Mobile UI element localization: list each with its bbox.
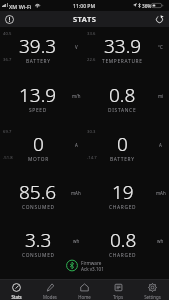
staticText: 69.7 [3, 129, 12, 135]
staticText: mAh [156, 190, 166, 196]
staticText: m/h [72, 93, 81, 99]
staticText: 36.7 [3, 57, 12, 63]
staticText: mi [158, 93, 164, 99]
staticText: Firmware [81, 260, 102, 266]
button[interactable]: 33.6 [84, 26, 169, 75]
staticText: BATTERY [110, 156, 135, 163]
staticText: °C [158, 44, 163, 50]
staticText: 39.3 [19, 33, 57, 59]
staticText: 13.9 [19, 82, 57, 108]
staticText: CONSUMED [22, 252, 55, 259]
button[interactable]: wh [0, 220, 84, 268]
staticText: 30.3 [87, 129, 96, 135]
button[interactable]: Refresh [152, 12, 167, 27]
staticText: Home [78, 294, 91, 300]
button[interactable]: Modes [33, 280, 67, 300]
button[interactable]: mAh [0, 172, 84, 220]
staticText: 40.5 [3, 31, 12, 37]
staticText: TEMPERATURE [102, 58, 143, 65]
staticText: -14.7 [87, 155, 97, 161]
staticText: 0.8 [109, 82, 136, 108]
staticText: Stats [11, 294, 22, 300]
staticText: CHARGED [109, 252, 137, 259]
button[interactable]: 40.5 [0, 26, 84, 75]
staticText: 19 [112, 179, 134, 205]
button[interactable]: mAh [84, 172, 169, 220]
staticText: BATTERY [26, 58, 51, 65]
staticText: Trips [113, 294, 123, 300]
staticText: wh [157, 238, 164, 244]
staticText: 0.8 [110, 227, 137, 253]
staticText: 85.6 [19, 179, 57, 205]
button[interactable]: Home [67, 280, 101, 300]
button[interactable]: 69.7 [0, 124, 84, 172]
staticText: DISTANCE [108, 107, 137, 114]
staticText: 3.3 [25, 227, 52, 253]
staticText: Modes [43, 294, 57, 300]
button[interactable]: Info [2, 12, 17, 27]
button[interactable]: Stats [0, 280, 33, 300]
staticText: CHARGED [109, 204, 137, 211]
staticText: MOTOR [28, 156, 49, 163]
staticText: 36% [142, 3, 152, 9]
button[interactable]: m/h [0, 75, 84, 124]
staticText: mAh [71, 190, 81, 196]
button[interactable]: wh [84, 220, 169, 268]
staticText: V [75, 44, 78, 50]
staticText: 33.6 [87, 31, 96, 37]
staticText: Settings [144, 294, 161, 300]
staticText: 33.9 [104, 33, 142, 59]
staticText: 0 [33, 131, 44, 157]
staticText: A [159, 142, 162, 148]
button[interactable]: Trips [101, 280, 135, 300]
button[interactable]: mi [84, 75, 169, 124]
staticText: STATS [73, 14, 97, 24]
staticText: 22.6 [87, 57, 96, 63]
button[interactable]: 30.3 [84, 124, 169, 172]
staticText: SPEED [29, 107, 47, 114]
staticText: 0 [117, 131, 128, 157]
staticText: A [75, 142, 78, 148]
staticText: XM Wi-Fi [9, 3, 32, 10]
button[interactable]: Settings [135, 280, 169, 300]
staticText: -51.8 [3, 155, 13, 161]
staticText: 11:00 PM [73, 3, 96, 10]
staticText: CONSUMED [22, 204, 55, 211]
staticText: wh [73, 238, 80, 244]
staticText: Ack v3.101 [81, 266, 104, 272]
